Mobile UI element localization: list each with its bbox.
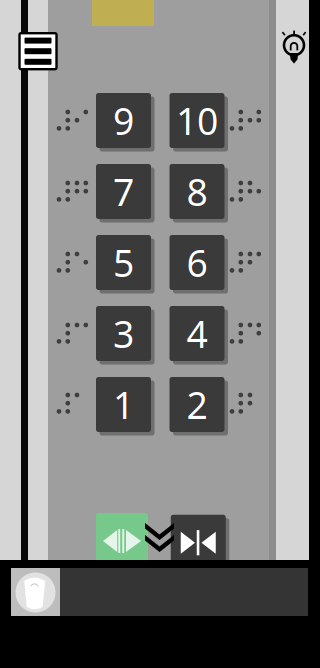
button[interactable]: 9: [92, 89, 154, 151]
staticText: 6: [186, 238, 207, 287]
button[interactable]: Close doors: [167, 513, 229, 571]
staticText: 7: [113, 167, 134, 216]
staticText: 2: [186, 380, 207, 429]
button[interactable]: 3: [92, 302, 154, 364]
staticText: 5: [113, 238, 134, 287]
staticText: 9: [113, 96, 134, 145]
button[interactable]: 5: [92, 231, 154, 293]
button[interactable]: 8: [166, 160, 228, 222]
staticText: 1: [113, 380, 134, 429]
staticText: 10: [176, 96, 218, 145]
button[interactable]: 7: [92, 160, 154, 222]
button[interactable]: Menu: [17, 31, 58, 71]
button[interactable]: Now playing: [11, 568, 308, 616]
staticText: 8: [186, 167, 207, 216]
staticText: 4: [186, 309, 207, 358]
button[interactable]: 4: [166, 302, 228, 364]
button[interactable]: 2: [166, 373, 228, 435]
button[interactable]: 6: [166, 231, 228, 293]
button[interactable]: Light: [280, 31, 308, 67]
staticText: 3: [113, 309, 134, 358]
button[interactable]: 1: [92, 373, 154, 435]
button[interactable]: 10: [166, 89, 228, 151]
button[interactable]: Open doors: [94, 511, 150, 569]
